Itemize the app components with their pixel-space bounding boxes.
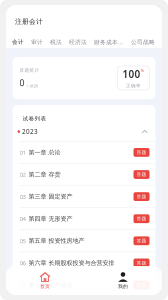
button[interactable]: 07 bbox=[12, 274, 155, 296]
button[interactable]: 首页 bbox=[6, 266, 84, 295]
button[interactable]: 04 bbox=[12, 208, 155, 229]
staticText: % bbox=[140, 67, 144, 73]
staticText: 第五章 投资性房地产 bbox=[28, 237, 84, 245]
staticText: 第四章 无形资产 bbox=[28, 215, 72, 222]
staticText: 经济法 bbox=[69, 38, 87, 46]
staticText: 0 bbox=[19, 77, 24, 89]
staticText: 100 bbox=[122, 67, 140, 81]
staticText: 答题 bbox=[136, 171, 146, 177]
staticText: 我的 bbox=[118, 283, 128, 289]
staticText: 会计 bbox=[12, 38, 24, 46]
staticText: 第七章 资产减值 bbox=[28, 281, 72, 289]
staticText: 首页 bbox=[40, 283, 50, 289]
staticText: 02 bbox=[19, 170, 25, 179]
staticText: 第六章 长期股权投资与合营安排 bbox=[28, 259, 114, 267]
staticText: 06 bbox=[19, 259, 25, 267]
staticText: 05 bbox=[19, 237, 25, 245]
staticText: 答题 bbox=[136, 149, 146, 155]
button[interactable]: 审计 bbox=[31, 38, 43, 46]
staticText: 审计 bbox=[31, 38, 43, 46]
staticText: 答题统计 bbox=[19, 67, 39, 73]
staticText: 03 bbox=[19, 192, 25, 201]
staticText: 答题 bbox=[136, 216, 146, 222]
staticText: 答题 bbox=[136, 194, 146, 200]
button[interactable]: 财务成本管理 bbox=[94, 38, 124, 46]
button[interactable]: 公司战略 bbox=[131, 38, 155, 46]
staticText: 正确率 bbox=[126, 83, 141, 89]
button[interactable]: 06 bbox=[12, 252, 155, 274]
button[interactable]: 02 bbox=[12, 164, 155, 185]
staticText: 公司战略 bbox=[131, 38, 155, 46]
staticText: 试卷列表 bbox=[22, 115, 46, 122]
button[interactable]: 2023 bbox=[12, 122, 155, 141]
staticText: 第三章 固定资产 bbox=[28, 193, 72, 200]
staticText: 2023 bbox=[22, 127, 38, 136]
button[interactable]: 税法 bbox=[50, 38, 62, 46]
button[interactable]: 01 bbox=[12, 142, 155, 163]
button[interactable]: 会计 bbox=[12, 38, 24, 46]
staticText: 04 bbox=[19, 215, 25, 223]
button[interactable]: 05 bbox=[12, 230, 155, 252]
staticText: 财务成本管理 bbox=[94, 38, 124, 46]
button[interactable]: 03 bbox=[12, 186, 155, 207]
staticText: 税法 bbox=[50, 38, 62, 46]
staticText: 答题 bbox=[136, 260, 146, 266]
staticText: / 4129 bbox=[26, 83, 37, 89]
staticText: 第一章 总论 bbox=[28, 149, 60, 156]
staticText: 注册会计 bbox=[15, 17, 43, 26]
staticText: 第二章 存货 bbox=[28, 171, 60, 178]
staticText: 答题 bbox=[136, 238, 146, 244]
staticText: 01 bbox=[19, 148, 25, 156]
button[interactable]: 我的 bbox=[84, 266, 162, 295]
button[interactable]: 经济法 bbox=[69, 38, 87, 46]
